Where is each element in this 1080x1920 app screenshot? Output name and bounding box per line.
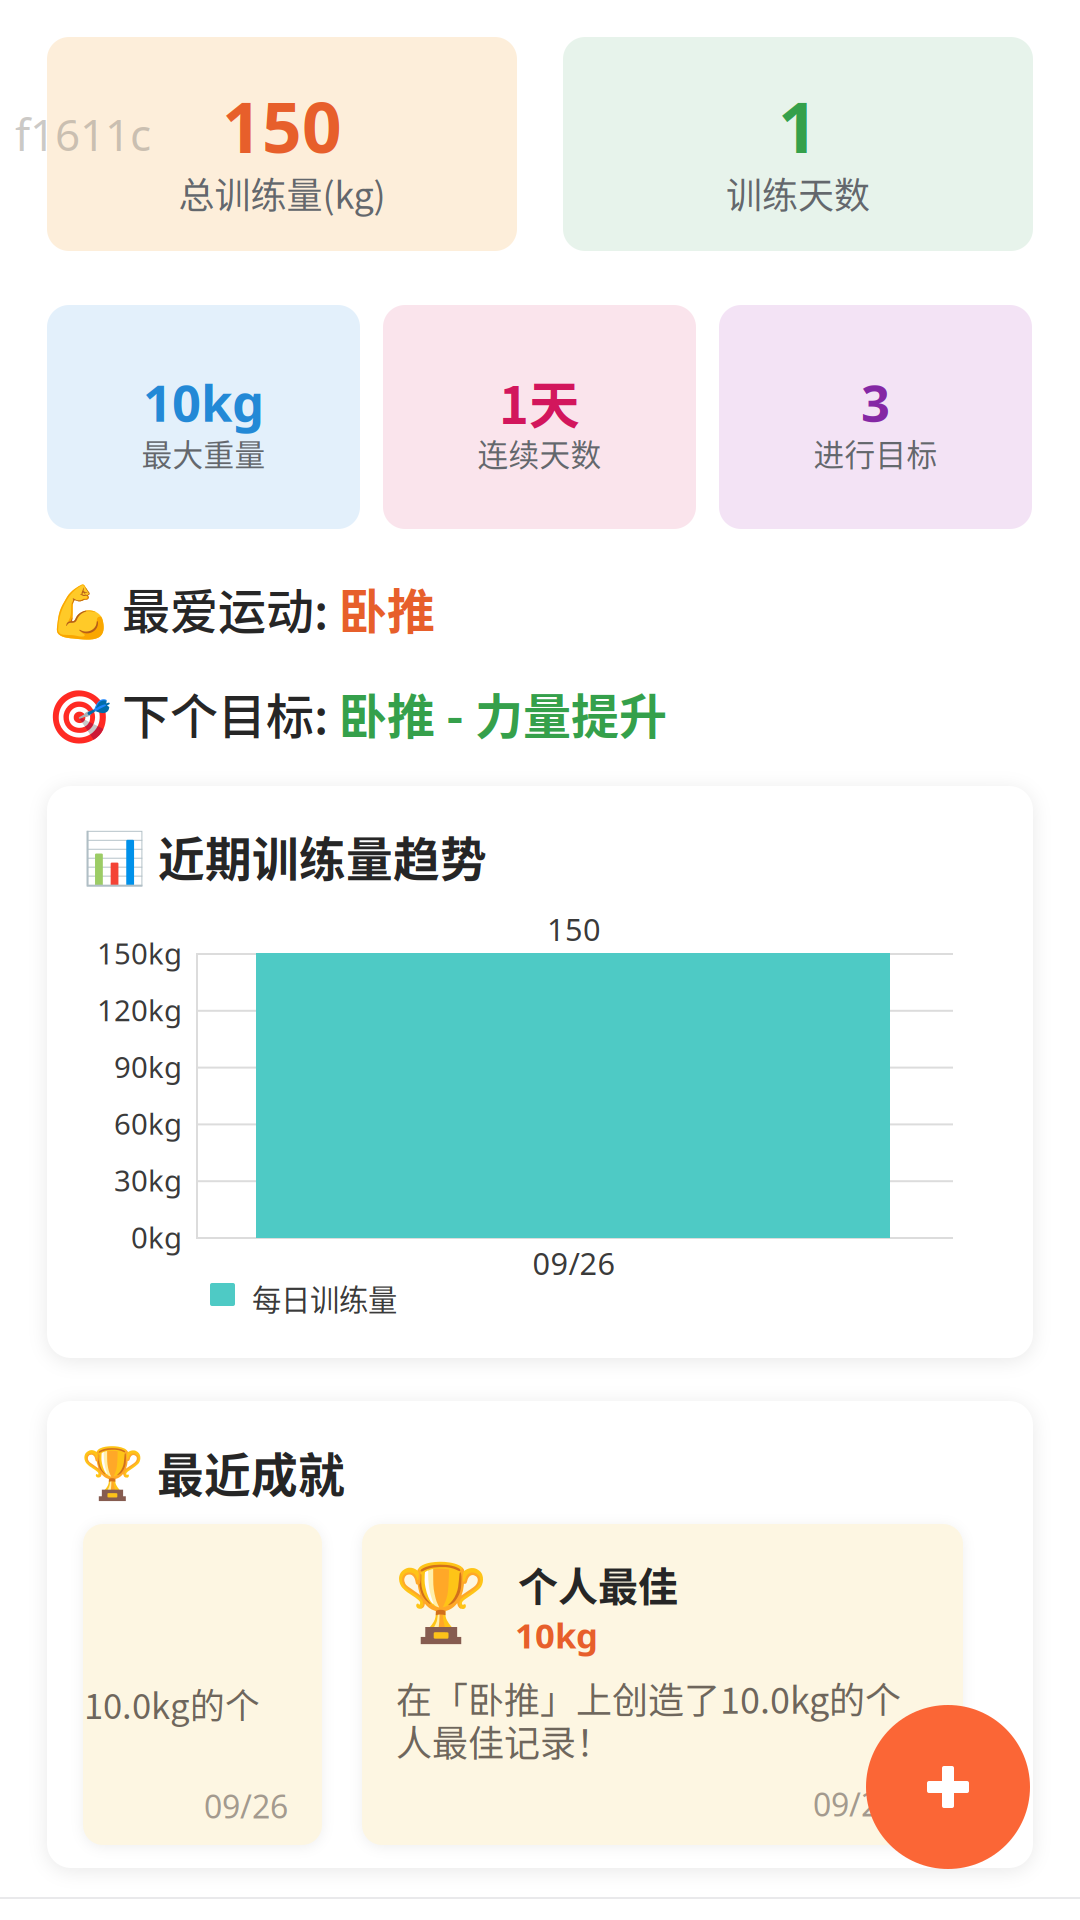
staticText: 连续天数 (477, 431, 601, 475)
staticText: 进行目标 (813, 431, 937, 475)
staticText: 90kg (114, 1047, 182, 1087)
button[interactable]: 3 (719, 305, 1032, 529)
staticText: 个人最佳 (518, 1555, 678, 1613)
staticText: 1天 (499, 365, 580, 439)
staticText: 09/26 (204, 1784, 288, 1828)
staticText: 人最佳记录！ (396, 1715, 612, 1767)
staticText: 卧推 - 力量提升 (339, 678, 667, 748)
button[interactable]: 1 (563, 37, 1033, 251)
staticText: 10kg (143, 367, 264, 436)
staticText: 卧推 (339, 573, 435, 643)
staticText: 🏆 (394, 1558, 489, 1647)
staticText: 🏆 (81, 1444, 144, 1503)
staticText: 3 (861, 367, 890, 436)
button[interactable]: 10.0kg的个 (83, 1524, 322, 1845)
staticText: 在「卧推」上创造了10.0kg的个 (396, 1672, 901, 1724)
staticText: 150 (222, 79, 342, 173)
staticText: 30kg (114, 1160, 182, 1200)
button[interactable]: 🏆 (362, 1524, 963, 1845)
staticText: 最大重量 (141, 431, 265, 475)
staticText: 1 (778, 79, 818, 173)
button[interactable]: 10kg (47, 305, 360, 529)
staticText: 总训练量(kg) (178, 167, 385, 219)
staticText: 🎯 (47, 687, 112, 748)
staticText: 150 (547, 908, 601, 950)
staticText: 最近成就 (157, 1438, 345, 1506)
staticText: 09/26 (813, 1782, 897, 1826)
staticText: 10.0kg的个 (84, 1679, 260, 1729)
staticText: 0kg (131, 1217, 182, 1257)
button[interactable]: Add record (866, 1705, 1030, 1869)
staticText: 120kg (97, 990, 182, 1030)
staticText: 每日训练量 (252, 1277, 397, 1319)
staticText: 10kg (515, 1611, 598, 1659)
staticText: f1611c (15, 104, 151, 164)
button[interactable]: 150 (47, 37, 517, 251)
button[interactable]: 1天 (383, 305, 696, 529)
staticText: 60kg (114, 1103, 182, 1143)
staticText: 近期训练量趋势 (158, 822, 487, 890)
staticText: 09/26 (532, 1242, 615, 1284)
staticText: 📊 (83, 829, 146, 888)
staticText: 150kg (97, 933, 182, 973)
staticText: 训练天数 (726, 167, 870, 219)
staticText: 最爱运动: (122, 573, 339, 643)
staticText: 💪 (48, 582, 113, 643)
staticText: 下个目标: (122, 678, 339, 748)
